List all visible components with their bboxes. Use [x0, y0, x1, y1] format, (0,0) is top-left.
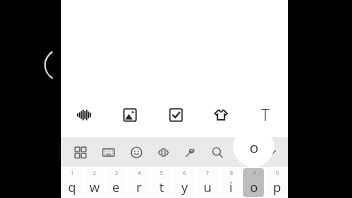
button[interactable]: Text — [243, 100, 288, 130]
staticText: p — [273, 178, 281, 196]
staticText: q — [68, 178, 76, 196]
staticText: 9 — [253, 170, 256, 177]
staticText: w — [89, 178, 100, 196]
staticText: i — [229, 178, 233, 196]
staticText: 2 — [93, 170, 96, 177]
staticText: 5 — [160, 170, 163, 177]
button[interactable]: 3 — [106, 168, 126, 197]
button[interactable]: 8 — [220, 168, 241, 197]
staticText: r — [136, 178, 142, 196]
button[interactable]: Collapse — [258, 137, 285, 167]
button[interactable]: 9 — [243, 168, 264, 197]
button[interactable]: 7 — [197, 168, 218, 197]
staticText: 8 — [230, 170, 233, 177]
staticText: u — [203, 178, 212, 196]
button[interactable]: Clipboard — [177, 137, 204, 167]
button[interactable]: Search — [204, 137, 231, 167]
button[interactable]: Translate — [150, 137, 177, 167]
button[interactable]: Apps — [66, 137, 94, 167]
button[interactable]: Photo — [107, 100, 153, 130]
button[interactable]: Voice message — [61, 100, 107, 130]
staticText: y — [181, 178, 188, 196]
staticText: 1 — [71, 170, 74, 177]
staticText: 0 — [276, 170, 279, 177]
button[interactable]: 2 — [84, 168, 104, 197]
staticText: o — [249, 137, 259, 157]
button[interactable]: Poll — [153, 100, 198, 130]
staticText: 7 — [206, 170, 209, 177]
staticText: e — [112, 178, 120, 196]
button[interactable]: 1 — [62, 168, 82, 197]
button[interactable]: 6 — [174, 168, 195, 197]
button[interactable]: Settings — [231, 137, 258, 167]
button[interactable]: 0 — [266, 168, 287, 197]
button[interactable]: 4 — [128, 168, 149, 197]
staticText: 6 — [183, 170, 186, 177]
button[interactable]: Emoji — [122, 137, 150, 167]
staticText: t — [159, 178, 164, 196]
staticText: o — [250, 178, 258, 196]
staticText: T — [261, 104, 270, 126]
staticText: 4 — [138, 170, 141, 177]
button[interactable]: Keyboard — [94, 137, 122, 167]
button[interactable]: Sticker — [198, 100, 243, 130]
button[interactable]: 5 — [151, 168, 172, 197]
staticText: 3 — [115, 170, 118, 177]
